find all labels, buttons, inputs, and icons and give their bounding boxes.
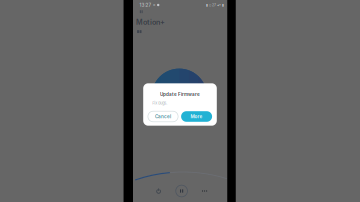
staticText: Motion+ xyxy=(136,18,165,26)
button[interactable]: Cancel xyxy=(148,111,178,122)
button[interactable]: Back xyxy=(138,9,144,15)
staticText: ✕ xyxy=(153,3,156,7)
staticText: 13:27 xyxy=(139,2,151,8)
staticText: Cancel xyxy=(155,114,171,119)
button[interactable]: Power xyxy=(153,185,165,197)
button[interactable]: More xyxy=(181,111,212,122)
staticText: Update Firmware xyxy=(160,91,200,97)
button[interactable]: More options xyxy=(199,185,211,197)
staticText: ▮ ▫ 27 ◂▪ ▮ xyxy=(206,3,224,7)
staticText: More xyxy=(191,114,203,119)
button[interactable]: Pause xyxy=(175,184,189,198)
staticText: Fix bugs. xyxy=(152,101,167,106)
